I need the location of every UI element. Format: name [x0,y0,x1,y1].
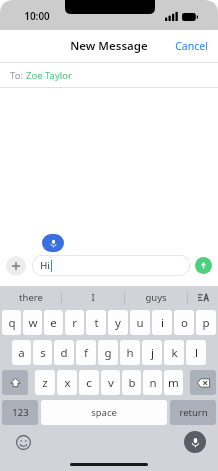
button[interactable]: v [101,370,120,395]
staticText: d [60,345,68,361]
button[interactable]: 123 [2,400,38,425]
staticText: l [195,345,198,361]
staticText: y [115,315,121,331]
button[interactable]: Send [195,257,212,274]
button[interactable]: Hi [32,255,190,276]
staticText: q [8,315,16,331]
button[interactable]: Dictate [42,234,64,252]
button[interactable]: a [12,340,31,365]
staticText: there [19,291,43,304]
staticText: i [161,315,164,331]
button[interactable]: q [2,310,21,335]
staticText: New Message [70,38,148,54]
staticText: v [108,375,114,391]
button[interactable]: r [65,310,84,335]
staticText: z [42,375,48,391]
button[interactable]: d [54,340,74,365]
button[interactable]: Voice input [184,431,206,453]
button[interactable]: Backspace [190,370,216,395]
button[interactable]: guys [125,286,187,308]
staticText: g [104,345,112,361]
button[interactable]: space [41,400,167,425]
button[interactable]: z [35,370,55,395]
button[interactable]: x [57,370,77,395]
staticText: guys [145,291,167,304]
button[interactable]: e [44,310,63,335]
staticText: f [84,345,88,361]
staticText: h [126,345,134,361]
staticText: space [91,406,117,419]
button[interactable]: l [186,340,206,365]
button[interactable]: I [62,286,124,308]
button[interactable]: c [79,370,99,395]
staticText: u [136,315,144,331]
staticText: b [128,375,136,391]
button[interactable]: n [143,370,162,395]
staticText: c [86,375,92,391]
button[interactable]: g [98,340,118,365]
staticText: e [50,315,57,331]
staticText: I [91,291,95,304]
staticText: r [72,315,77,331]
staticText: 123 [12,406,29,419]
button[interactable]: w [23,310,42,335]
button[interactable]: y [108,310,128,335]
button[interactable]: o [174,310,194,335]
button[interactable]: f [76,340,96,365]
staticText: return [179,406,208,419]
button[interactable]: t [86,310,106,335]
staticText: Hi [40,259,50,272]
button[interactable]: i [152,310,172,335]
staticText: k [171,345,178,361]
staticText: s [40,345,46,361]
staticText: x [64,375,71,391]
button[interactable]: p [196,310,216,335]
button[interactable]: k [164,340,184,365]
staticText: j [151,345,154,361]
staticText: m [168,375,179,391]
button[interactable]: m [164,370,183,395]
staticText: To: [10,69,23,82]
button[interactable]: return [170,400,216,425]
button[interactable]: there [0,286,61,308]
button[interactable]: b [122,370,141,395]
staticText: Cancel [175,39,208,53]
button[interactable]: s [33,340,52,365]
button[interactable]: Emoji [14,433,32,451]
button[interactable]: Add attachment [6,256,26,276]
button[interactable]: u [130,310,150,335]
staticText: o [181,315,188,331]
staticText: n [149,375,157,391]
staticText: w [28,315,38,331]
staticText: 10:00 [24,9,50,23]
staticText: p [202,315,210,331]
button[interactable]: j [142,340,162,365]
button[interactable]: Cancel [165,33,218,59]
staticText: t [94,315,99,331]
staticText: a [18,345,25,361]
button[interactable]: Shift [2,370,28,395]
staticText: Zoe Taylor [26,69,72,82]
button[interactable]: h [120,340,140,365]
button[interactable]: Text formatting [188,286,218,308]
